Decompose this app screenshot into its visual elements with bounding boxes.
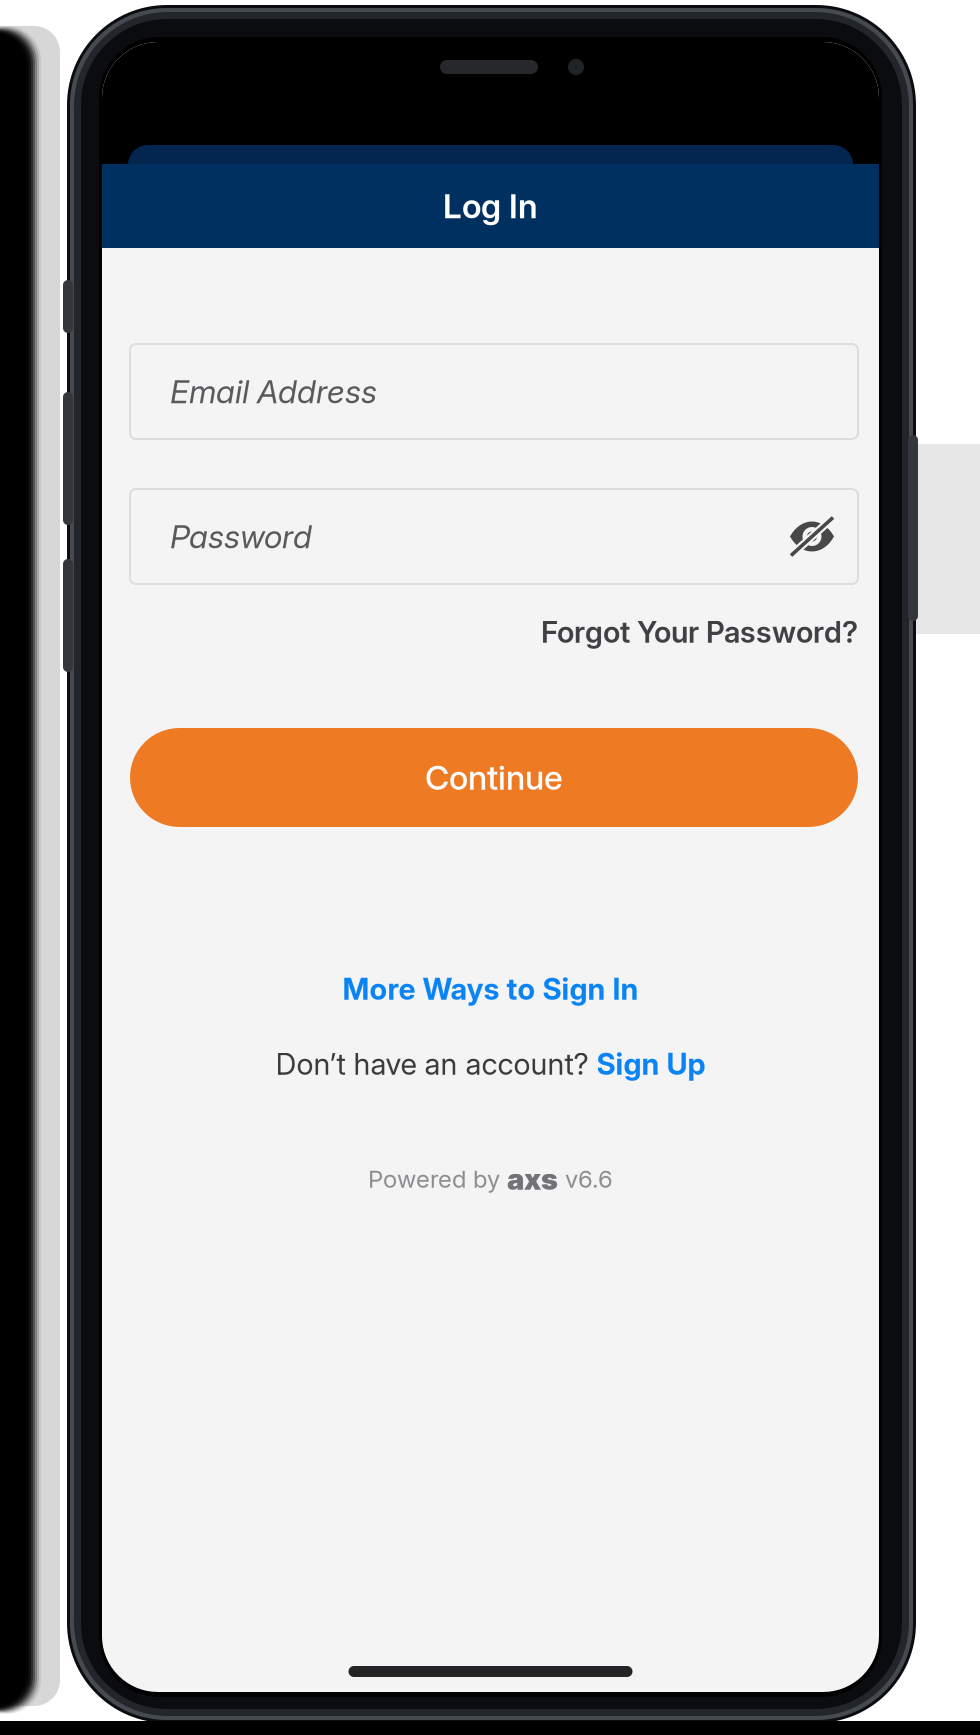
button[interactable]: Sign Up — [596, 1046, 705, 1082]
button[interactable]: Show password — [788, 514, 836, 558]
button[interactable]: More Ways to Sign In — [102, 961, 879, 1017]
staticText: axs — [507, 1161, 558, 1197]
staticText: Email Address — [170, 372, 377, 411]
staticText: Forgot Your Password? — [541, 614, 858, 650]
staticText: Powered by — [368, 1164, 507, 1193]
staticText: Log In — [443, 186, 538, 226]
staticText: Sign Up — [596, 1046, 705, 1082]
button[interactable]: Password — [130, 489, 858, 584]
staticText: Continue — [425, 757, 563, 798]
button[interactable]: Email Address — [130, 344, 858, 439]
staticText: Don’t have an account? — [275, 1046, 596, 1082]
button[interactable]: Continue — [130, 728, 858, 827]
staticText: Password — [170, 517, 312, 556]
staticText: v6.6 — [558, 1164, 613, 1193]
staticText: More Ways to Sign In — [342, 971, 638, 1007]
button[interactable]: Forgot Your Password? — [130, 605, 858, 659]
